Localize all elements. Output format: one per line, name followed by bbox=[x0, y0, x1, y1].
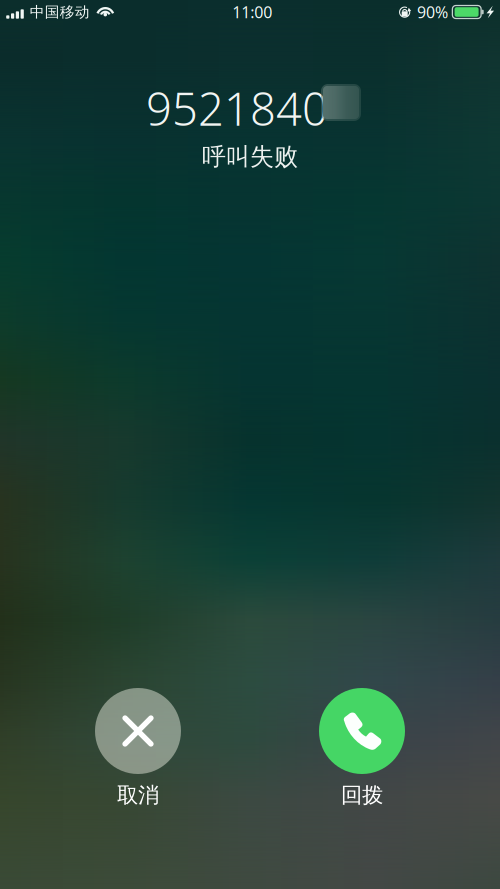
staticText: 呼叫失败 bbox=[202, 142, 298, 171]
staticText: 中国移动 bbox=[30, 3, 90, 21]
staticText: 取消 bbox=[117, 782, 159, 808]
staticText: 回拨 bbox=[341, 782, 383, 808]
staticText: 90% bbox=[417, 1, 448, 23]
button[interactable]: 取消 bbox=[95, 688, 181, 808]
staticText: 11:00 bbox=[232, 1, 272, 23]
staticText: 9521840 bbox=[146, 78, 328, 138]
button[interactable]: 回拨 bbox=[319, 688, 405, 808]
